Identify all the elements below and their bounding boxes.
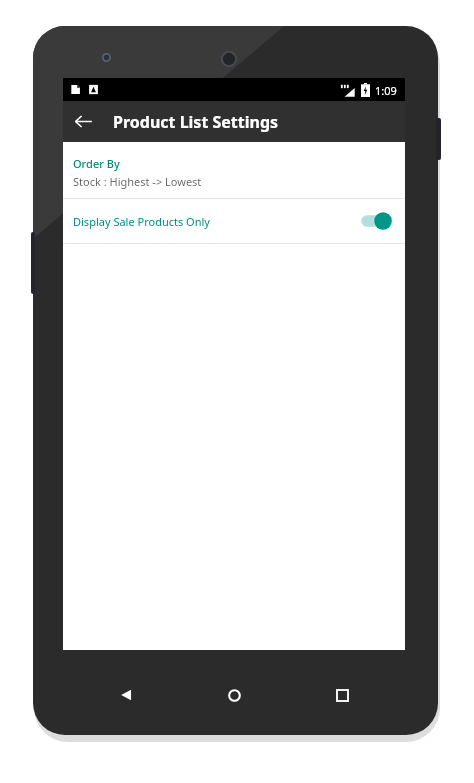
staticText: Product List Settings — [113, 111, 279, 133]
button[interactable]: Display Sale Products Only — [63, 199, 405, 243]
button[interactable]: Display Sale Products Only toggle — [360, 210, 392, 232]
staticText: Stock : Highest -> Lowest — [73, 174, 202, 189]
button[interactable]: Order By — [63, 149, 405, 198]
button[interactable]: Back — [109, 678, 143, 712]
button[interactable]: Recent apps — [325, 678, 359, 712]
button[interactable]: Home — [217, 678, 251, 712]
staticText: Order By — [73, 156, 120, 171]
button[interactable]: Navigate up — [63, 101, 104, 142]
staticText: Display Sale Products Only — [73, 214, 210, 229]
staticText: 1:09 — [375, 83, 397, 98]
